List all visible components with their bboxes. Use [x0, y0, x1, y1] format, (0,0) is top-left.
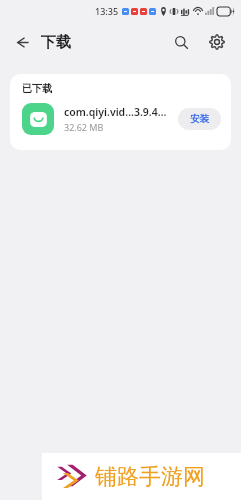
- staticText: 32.62 MB: [64, 121, 104, 133]
- button[interactable]: Search: [167, 28, 195, 56]
- other: Back: [14, 34, 31, 51]
- staticText: com.qiyi.vid…3.9.40.apk: [64, 105, 172, 119]
- button[interactable]: Back: [10, 29, 75, 56]
- staticText: 铺路手游网: [95, 463, 205, 491]
- button[interactable]: Settings: [203, 28, 231, 56]
- staticText: 已下载: [22, 82, 52, 95]
- button[interactable]: 安装: [178, 108, 221, 130]
- button[interactable]: com.qiyi.vid…3.9.40.apk: [10, 103, 231, 135]
- staticText: 下载: [41, 33, 71, 52]
- staticText: 13:35: [95, 5, 119, 17]
- staticText: 安装: [190, 113, 209, 125]
